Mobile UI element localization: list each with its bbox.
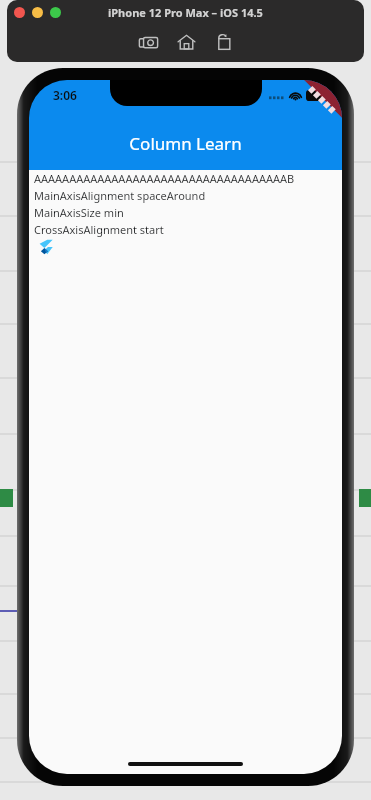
staticText: iPhone 12 Pro Max – iOS 14.5 bbox=[108, 5, 263, 20]
staticText: MainAxisAlignment spaceAround bbox=[34, 188, 206, 203]
button[interactable] bbox=[50, 7, 61, 18]
button[interactable]: Flutter logo bbox=[38, 239, 54, 255]
button[interactable] bbox=[32, 7, 43, 18]
staticText: AAAAAAAAAAAAAAAAAAAAAAAAAAAAAAAAAAAAB bbox=[34, 171, 295, 186]
button[interactable]: Home bbox=[173, 29, 199, 55]
staticText: 3:06 bbox=[53, 87, 77, 103]
button[interactable] bbox=[14, 7, 25, 18]
staticText: MainAxisSize min bbox=[34, 205, 124, 220]
staticText: CrossAxisAlignment start bbox=[34, 222, 164, 237]
button[interactable]: Rotate bbox=[211, 29, 237, 55]
button[interactable]: Screenshot bbox=[135, 29, 161, 55]
button[interactable]: Column Learn bbox=[129, 132, 242, 155]
